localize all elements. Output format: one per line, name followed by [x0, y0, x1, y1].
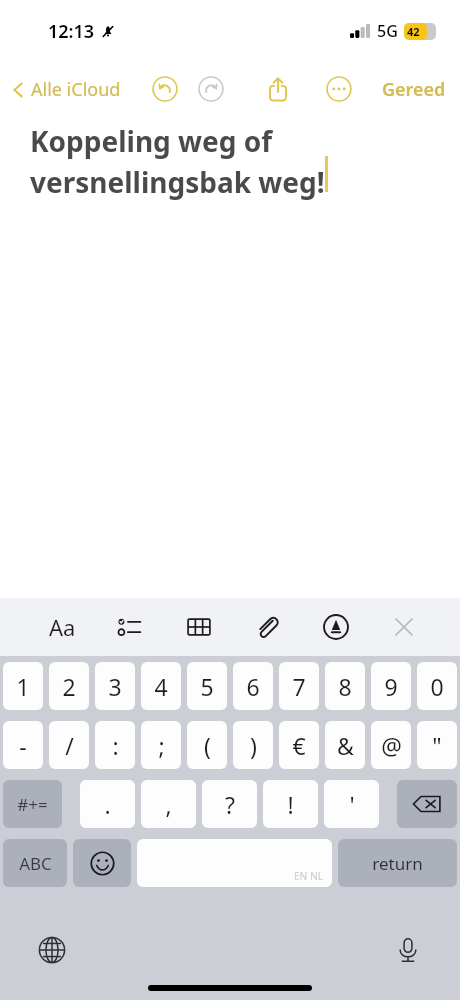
- button[interactable]: 7: [279, 662, 319, 710]
- staticText: !: [287, 789, 294, 820]
- button[interactable]: (: [187, 721, 227, 769]
- button[interactable]: return: [338, 839, 457, 887]
- button[interactable]: /: [49, 721, 89, 769]
- staticText: Alle iCloud: [31, 77, 121, 102]
- staticText: return: [372, 852, 423, 875]
- button[interactable]: 6: [233, 662, 273, 710]
- button[interactable]: Undo: [146, 70, 184, 108]
- button[interactable]: ,: [141, 780, 196, 828]
- staticText: ;: [158, 730, 165, 761]
- button[interactable]: 5: [187, 662, 227, 710]
- staticText: &: [337, 730, 354, 761]
- staticText: 5: [200, 671, 214, 702]
- button[interactable]: Text format: [40, 605, 84, 649]
- staticText: 2: [62, 671, 76, 702]
- button[interactable]: :: [95, 721, 135, 769]
- staticText: 0: [430, 671, 444, 702]
- button[interactable]: Space: [137, 839, 332, 887]
- button[interactable]: Redo: [192, 70, 230, 108]
- button[interactable]: Alle iCloud: [8, 77, 121, 102]
- staticText: Aa: [49, 612, 76, 642]
- button[interactable]: Checklist: [108, 605, 152, 649]
- staticText: 8: [338, 671, 352, 702]
- button[interactable]: ": [417, 721, 457, 769]
- staticText: 42: [407, 24, 420, 39]
- button[interactable]: @: [371, 721, 411, 769]
- staticText: 4: [154, 671, 168, 702]
- staticText: #+=: [17, 793, 48, 816]
- staticText: .: [104, 789, 111, 820]
- staticText: 1: [16, 671, 30, 702]
- staticText: 7: [292, 671, 306, 702]
- button[interactable]: #+=: [3, 780, 62, 828]
- button[interactable]: 4: [141, 662, 181, 710]
- button[interactable]: Dictate: [386, 928, 430, 972]
- button[interactable]: More: [320, 70, 358, 108]
- button[interactable]: Close keyboard: [382, 605, 426, 649]
- button[interactable]: ): [233, 721, 273, 769]
- button[interactable]: 1: [3, 662, 43, 710]
- staticText: 5G: [377, 20, 398, 42]
- button[interactable]: Markup: [314, 605, 358, 649]
- button[interactable]: Emoji: [73, 839, 131, 887]
- staticText: 12:13: [48, 19, 95, 44]
- button[interactable]: Gereed: [382, 77, 446, 102]
- staticText: ): [250, 730, 257, 761]
- staticText: ?: [225, 789, 235, 820]
- staticText: (: [204, 730, 211, 761]
- button[interactable]: !: [263, 780, 318, 828]
- button[interactable]: Change keyboard language: [30, 928, 74, 972]
- staticText: Gereed: [382, 77, 446, 102]
- staticText: ,: [165, 789, 172, 820]
- staticText: ": [432, 730, 442, 761]
- button[interactable]: &: [325, 721, 365, 769]
- button[interactable]: ABC: [3, 839, 67, 887]
- button[interactable]: 9: [371, 662, 411, 710]
- staticText: Koppeling weg of versnellingsbak weg!: [30, 122, 325, 201]
- button[interactable]: 3: [95, 662, 135, 710]
- staticText: /: [65, 730, 74, 761]
- button[interactable]: €: [279, 721, 319, 769]
- staticText: 9: [384, 671, 398, 702]
- staticText: €: [292, 730, 306, 761]
- button[interactable]: ': [324, 780, 379, 828]
- button[interactable]: Share: [258, 69, 298, 109]
- button[interactable]: ;: [141, 721, 181, 769]
- staticText: ': [349, 789, 355, 820]
- staticText: -: [19, 730, 27, 761]
- button[interactable]: ?: [202, 780, 257, 828]
- button[interactable]: Table: [177, 605, 221, 649]
- staticText: 6: [246, 671, 260, 702]
- staticText: EN NL: [294, 869, 324, 883]
- button[interactable]: 2: [49, 662, 89, 710]
- button[interactable]: Backspace: [397, 780, 457, 828]
- staticText: :: [112, 730, 119, 761]
- button[interactable]: 0: [417, 662, 457, 710]
- staticText: ABC: [19, 852, 52, 875]
- button[interactable]: 8: [325, 662, 365, 710]
- button[interactable]: Attach: [245, 605, 289, 649]
- staticText: @: [381, 730, 402, 761]
- button[interactable]: -: [3, 721, 43, 769]
- staticText: 3: [108, 671, 122, 702]
- button[interactable]: .: [80, 780, 135, 828]
